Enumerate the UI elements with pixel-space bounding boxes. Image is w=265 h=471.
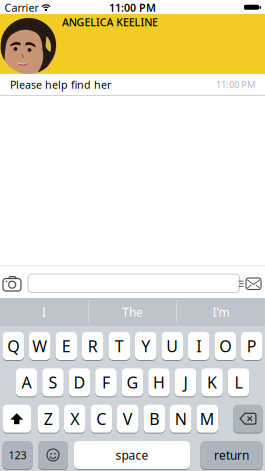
button[interactable]: The bbox=[89, 298, 176, 326]
staticText: Z bbox=[44, 408, 53, 429]
staticText: return bbox=[214, 447, 249, 463]
staticText: L bbox=[234, 372, 242, 393]
staticText: J bbox=[183, 372, 187, 393]
staticText: Please help find her bbox=[10, 77, 111, 92]
staticText: P bbox=[247, 335, 257, 357]
staticText: S bbox=[48, 372, 57, 393]
staticText: X bbox=[70, 408, 79, 429]
staticText: A bbox=[21, 372, 31, 393]
button[interactable]: I bbox=[188, 332, 209, 360]
button[interactable]: L bbox=[228, 368, 249, 396]
button[interactable]: Z bbox=[37, 405, 59, 433]
button[interactable]: Message field bbox=[28, 274, 239, 292]
button[interactable]: C bbox=[90, 405, 112, 433]
button[interactable]: P bbox=[241, 332, 262, 360]
staticText: O bbox=[219, 335, 231, 357]
button[interactable]: Q bbox=[2, 332, 24, 360]
button[interactable]: Send bbox=[238, 277, 261, 290]
button[interactable]: Emoji bbox=[38, 441, 68, 469]
button[interactable]: O bbox=[214, 332, 236, 360]
button[interactable]: D bbox=[69, 368, 90, 396]
staticText: N bbox=[175, 408, 187, 429]
staticText: Q bbox=[7, 335, 19, 357]
button[interactable]: I'm bbox=[177, 298, 265, 326]
button[interactable]: Shift bbox=[2, 405, 31, 433]
button[interactable]: R bbox=[82, 332, 103, 360]
button[interactable]: B bbox=[143, 405, 165, 433]
button[interactable]: Please help find her bbox=[0, 74, 265, 96]
staticText: W bbox=[32, 335, 47, 357]
staticText: 11:00 PM bbox=[216, 78, 255, 91]
button[interactable]: X bbox=[64, 405, 85, 433]
staticText: 11:00 PM bbox=[109, 0, 156, 15]
button[interactable]: E bbox=[55, 332, 77, 360]
button[interactable]: U bbox=[161, 332, 183, 360]
staticText: space bbox=[115, 447, 148, 463]
staticText: I bbox=[42, 304, 46, 320]
button[interactable]: K bbox=[201, 368, 223, 396]
button[interactable]: Camera bbox=[3, 276, 21, 291]
button[interactable]: return bbox=[200, 441, 262, 469]
button[interactable]: 123 bbox=[2, 441, 32, 469]
staticText: U bbox=[166, 335, 178, 357]
button[interactable]: S bbox=[42, 368, 64, 396]
staticText: I'm bbox=[213, 304, 230, 320]
button[interactable]: V bbox=[117, 405, 138, 433]
staticText: M bbox=[200, 408, 215, 429]
staticText: K bbox=[207, 372, 217, 393]
button[interactable]: Delete bbox=[233, 405, 262, 433]
staticText: G bbox=[126, 372, 138, 393]
button[interactable]: H bbox=[148, 368, 170, 396]
button[interactable]: T bbox=[108, 332, 130, 360]
staticText: Carrier bbox=[4, 0, 38, 15]
button[interactable]: N bbox=[170, 405, 191, 433]
staticText: D bbox=[73, 372, 85, 393]
staticText: H bbox=[153, 372, 165, 393]
button[interactable]: space bbox=[74, 441, 190, 469]
button[interactable]: A bbox=[16, 368, 37, 396]
staticText: The bbox=[122, 304, 143, 320]
button[interactable]: Y bbox=[135, 332, 156, 360]
staticText: T bbox=[115, 335, 124, 357]
staticText: F bbox=[102, 372, 110, 393]
button[interactable]: M bbox=[196, 405, 218, 433]
staticText: Y bbox=[141, 335, 150, 357]
staticText: R bbox=[88, 335, 98, 357]
staticText: E bbox=[62, 335, 71, 357]
staticText: C bbox=[96, 408, 106, 429]
staticText: B bbox=[149, 408, 159, 429]
button[interactable]: I bbox=[0, 298, 88, 326]
staticText: I bbox=[196, 335, 201, 357]
staticText: ANGELICA KEELINE bbox=[62, 15, 158, 29]
button[interactable]: G bbox=[122, 368, 143, 396]
staticText: 123 bbox=[8, 448, 26, 462]
staticText: V bbox=[123, 408, 133, 429]
button[interactable]: J bbox=[175, 368, 196, 396]
button[interactable]: W bbox=[29, 332, 50, 360]
button[interactable]: F bbox=[95, 368, 117, 396]
